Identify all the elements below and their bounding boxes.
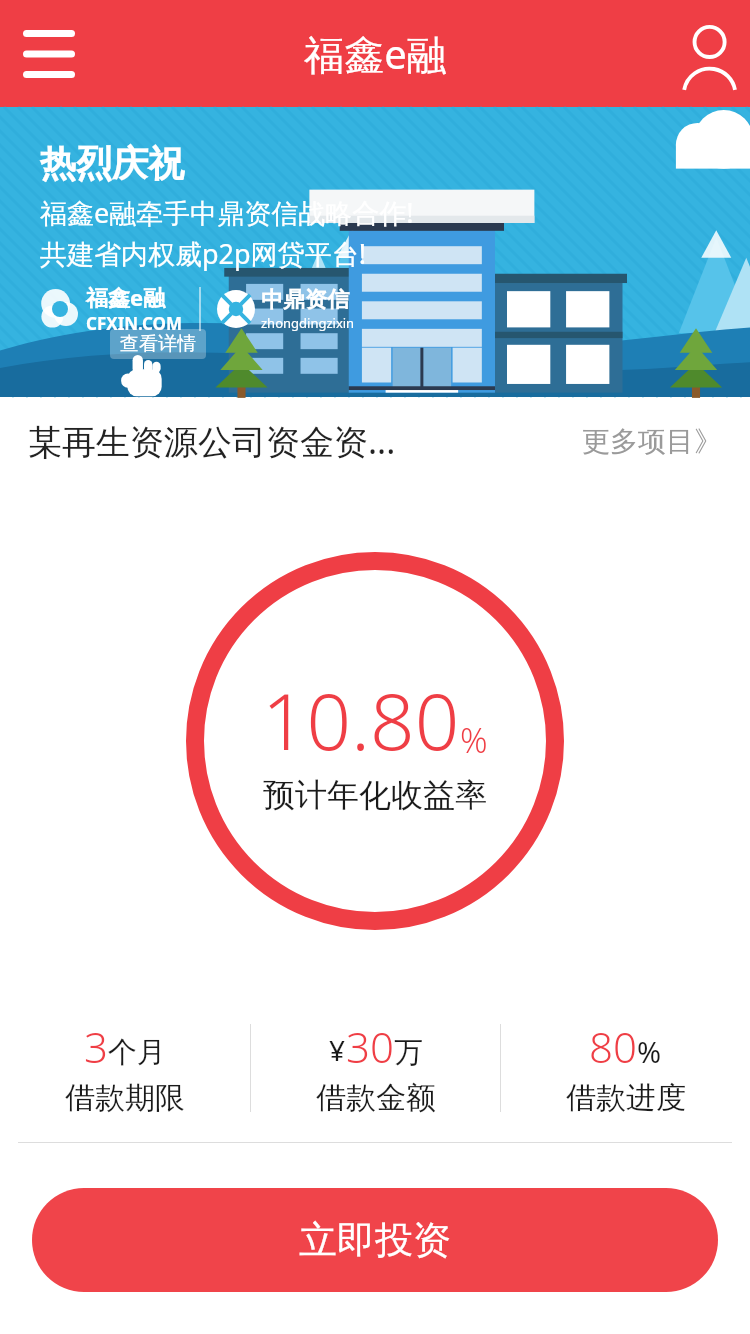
staticText: 福鑫e融牵手中鼎资信战略合作! xyxy=(40,194,414,231)
button[interactable]: ¥ xyxy=(251,1018,500,1117)
staticText: 查看详情 xyxy=(120,332,196,356)
staticText: 借款期限 xyxy=(65,1079,185,1117)
staticText: 10.80 xyxy=(262,667,460,773)
staticText: 共建省内权威p2p网贷平台! xyxy=(40,235,366,272)
button[interactable]: Profile xyxy=(664,11,750,97)
staticText: 个月 xyxy=(108,1034,166,1071)
button[interactable]: 立即投资 xyxy=(32,1188,718,1292)
staticText: % xyxy=(460,717,488,763)
staticText: 借款进度 xyxy=(566,1079,686,1117)
button[interactable]: 热烈庆祝 xyxy=(0,107,750,397)
staticText: 预计年化收益率 xyxy=(263,775,487,815)
button[interactable]: 80 xyxy=(501,1018,750,1117)
staticText: 中鼎资信 xyxy=(261,286,349,314)
staticText: 更多项目》 xyxy=(582,424,722,459)
button[interactable]: 更多项目》 xyxy=(582,424,722,459)
staticText: 福鑫e融 xyxy=(86,282,166,312)
staticText: 借款金额 xyxy=(316,1079,436,1117)
staticText: 80 xyxy=(589,1018,637,1075)
staticText: 福鑫e融 xyxy=(304,26,447,81)
staticText: 30 xyxy=(346,1018,394,1075)
button[interactable]: Menu xyxy=(14,19,84,89)
staticText: 3 xyxy=(84,1018,108,1075)
staticText: 万 xyxy=(394,1034,423,1071)
button[interactable]: 3 xyxy=(0,1018,250,1117)
staticText: 立即投资 xyxy=(299,1216,451,1264)
staticText: 热烈庆祝 xyxy=(40,141,184,186)
staticText: CFXIN.COM xyxy=(86,312,183,335)
staticText: 某再生资源公司资金资... xyxy=(28,418,582,464)
staticText: % xyxy=(637,1032,662,1071)
staticText: ¥ xyxy=(329,1031,346,1069)
staticText: zhongdingzixin xyxy=(261,314,355,332)
